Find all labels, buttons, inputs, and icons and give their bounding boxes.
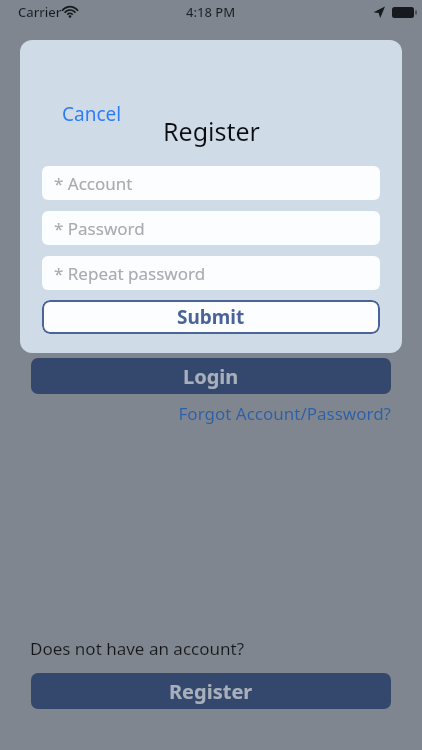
- staticText: Login: [183, 363, 239, 390]
- button[interactable]: Cancel: [58, 97, 126, 131]
- button[interactable]: Forgot Account/Password?: [120, 401, 391, 425]
- button[interactable]: Submit: [42, 300, 380, 334]
- staticText: Carrier: [18, 3, 62, 21]
- staticText: Register: [163, 114, 260, 148]
- button[interactable]: * Repeat password: [42, 256, 380, 290]
- staticText: 4:18 PM: [186, 3, 236, 21]
- button[interactable]: * Password: [42, 211, 380, 245]
- staticText: Forgot Account/Password?: [178, 402, 391, 425]
- staticText: * Account: [54, 172, 133, 195]
- button[interactable]: Login: [31, 358, 391, 394]
- button[interactable]: Register: [31, 673, 391, 709]
- staticText: * Repeat password: [54, 262, 206, 285]
- staticText: Cancel: [62, 101, 122, 127]
- staticText: Submit: [177, 304, 245, 330]
- staticText: Does not have an account?: [30, 637, 245, 660]
- staticText: Register: [169, 678, 253, 705]
- staticText: * Password: [54, 217, 145, 240]
- button[interactable]: * Account: [42, 166, 380, 200]
